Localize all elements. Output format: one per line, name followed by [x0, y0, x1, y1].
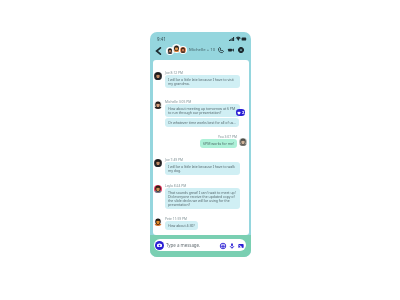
- button[interactable]: 2 reactions: [236, 109, 245, 116]
- staticText: Or whatever time works best for all of u…: [168, 120, 236, 125]
- staticText: I will be a little late because I have t…: [168, 77, 237, 86]
- button[interactable]: Or whatever time works best for all of u…: [165, 118, 239, 127]
- staticText: 2: [242, 110, 245, 116]
- button[interactable]: Camera: [155, 241, 164, 250]
- button[interactable]: Camera: [154, 239, 246, 251]
- button[interactable]: Video call: [225, 44, 236, 55]
- button[interactable]: 6PM works for me!: [200, 139, 237, 148]
- button[interactable]: That sounds great! I can't wait to meet …: [165, 188, 240, 209]
- button[interactable]: I will be a little late because I have t…: [165, 162, 240, 175]
- staticText: I will be a little late because I have t…: [168, 164, 237, 173]
- staticText: 6PM works for me!: [203, 141, 234, 146]
- button[interactable]: How about 4:30?: [165, 221, 198, 230]
- staticText: How about meeting up tomorrow at 6 PM to…: [168, 106, 237, 115]
- staticText: Michelle + 10: [189, 46, 216, 52]
- button[interactable]: Back: [153, 45, 163, 57]
- staticText: 9:41: [157, 36, 166, 42]
- button[interactable]: Photos: [237, 242, 244, 249]
- button[interactable]: Voice message: [228, 242, 235, 249]
- button[interactable]: Settings: [235, 44, 246, 55]
- button[interactable]: Call: [215, 44, 226, 55]
- staticText: That sounds great! I can't wait to meet …: [168, 190, 237, 207]
- staticText: Michelle 3:05 PM: [165, 99, 192, 103]
- button[interactable]: I will be a little late because I have t…: [165, 75, 240, 88]
- staticText: Type a message.: [166, 242, 201, 248]
- staticText: Joe 7:49 PM: [165, 157, 183, 161]
- staticText: Layla 8:24 PM: [165, 183, 187, 187]
- staticText: You 3:07 PM: [218, 134, 237, 138]
- button[interactable]: Stickers: [219, 242, 226, 249]
- button[interactable]: Michelle + 10: [165, 43, 213, 55]
- staticText: Pete 11:59 PM: [165, 216, 188, 220]
- staticText: How about 4:30?: [168, 223, 195, 228]
- button[interactable]: How about meeting up tomorrow at 6 PM to…: [165, 104, 240, 117]
- staticText: Joe 8:12 PM: [165, 70, 183, 74]
